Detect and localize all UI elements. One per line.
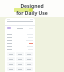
button[interactable]	[7, 42, 33, 45]
button[interactable]	[7, 36, 33, 39]
button[interactable]	[7, 67, 15, 71]
button[interactable]	[16, 57, 24, 61]
button[interactable]	[25, 52, 33, 56]
other: Accent	[29, 8, 33, 12]
button[interactable]	[7, 57, 15, 61]
button[interactable]	[7, 33, 33, 36]
button[interactable]	[7, 52, 15, 56]
button[interactable]	[16, 67, 24, 71]
button[interactable]	[7, 45, 33, 48]
button[interactable]	[25, 57, 33, 61]
button[interactable]	[25, 62, 33, 66]
staticText: Designed	[20, 3, 44, 10]
button[interactable]	[7, 39, 33, 42]
button[interactable]	[7, 48, 33, 51]
staticText: for Daily Use	[16, 10, 48, 17]
button[interactable]	[25, 67, 33, 71]
button[interactable]	[16, 62, 24, 66]
button[interactable]	[7, 62, 15, 66]
button[interactable]	[16, 52, 24, 56]
